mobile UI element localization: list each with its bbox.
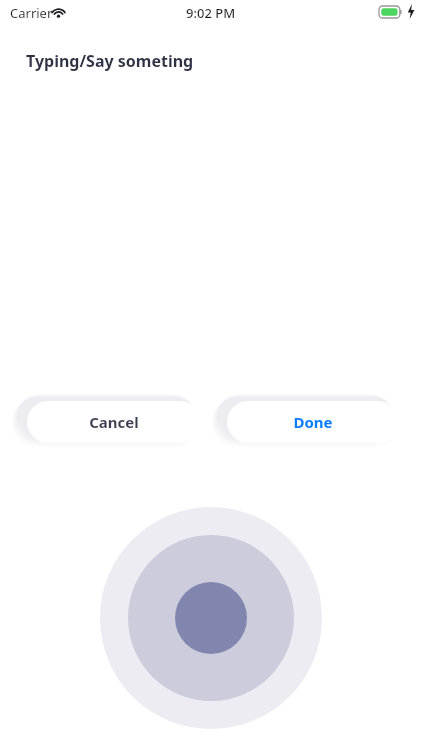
staticText: Carrier (10, 4, 53, 22)
staticText: Cancel (89, 412, 139, 432)
button[interactable]: Cancel (27, 401, 201, 443)
staticText: Typing/Say someting (26, 50, 194, 72)
button[interactable]: Done (227, 401, 399, 443)
button[interactable]: Record (100, 507, 322, 729)
staticText: 9:02 PM (186, 4, 236, 22)
staticText: Done (293, 412, 333, 432)
